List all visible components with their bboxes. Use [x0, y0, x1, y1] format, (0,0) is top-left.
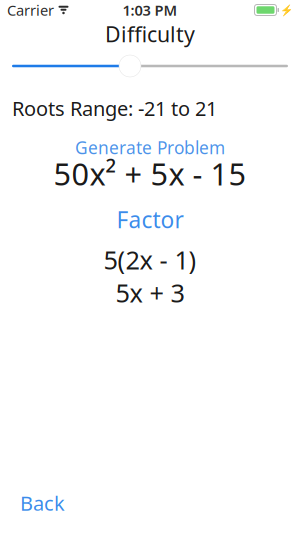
- button[interactable]: Generate Problem: [0, 138, 300, 158]
- staticText: Difficulty: [105, 20, 195, 48]
- staticText: Back: [20, 490, 65, 516]
- staticText: 1:03 PM: [122, 0, 177, 20]
- staticText: 5x + 3: [115, 276, 184, 309]
- staticText: Generate Problem: [75, 136, 225, 159]
- button[interactable]: Factor: [0, 208, 300, 232]
- staticText: ⚡: [280, 4, 293, 16]
- staticText: Carrier: [7, 0, 54, 20]
- staticText: 5(2x - 1): [103, 243, 196, 276]
- staticText: Factor: [116, 204, 183, 235]
- staticText: 50x² + 5x - 15: [53, 153, 246, 194]
- staticText: Roots Range: -21 to 21: [12, 95, 217, 122]
- button[interactable]: Back: [20, 492, 65, 514]
